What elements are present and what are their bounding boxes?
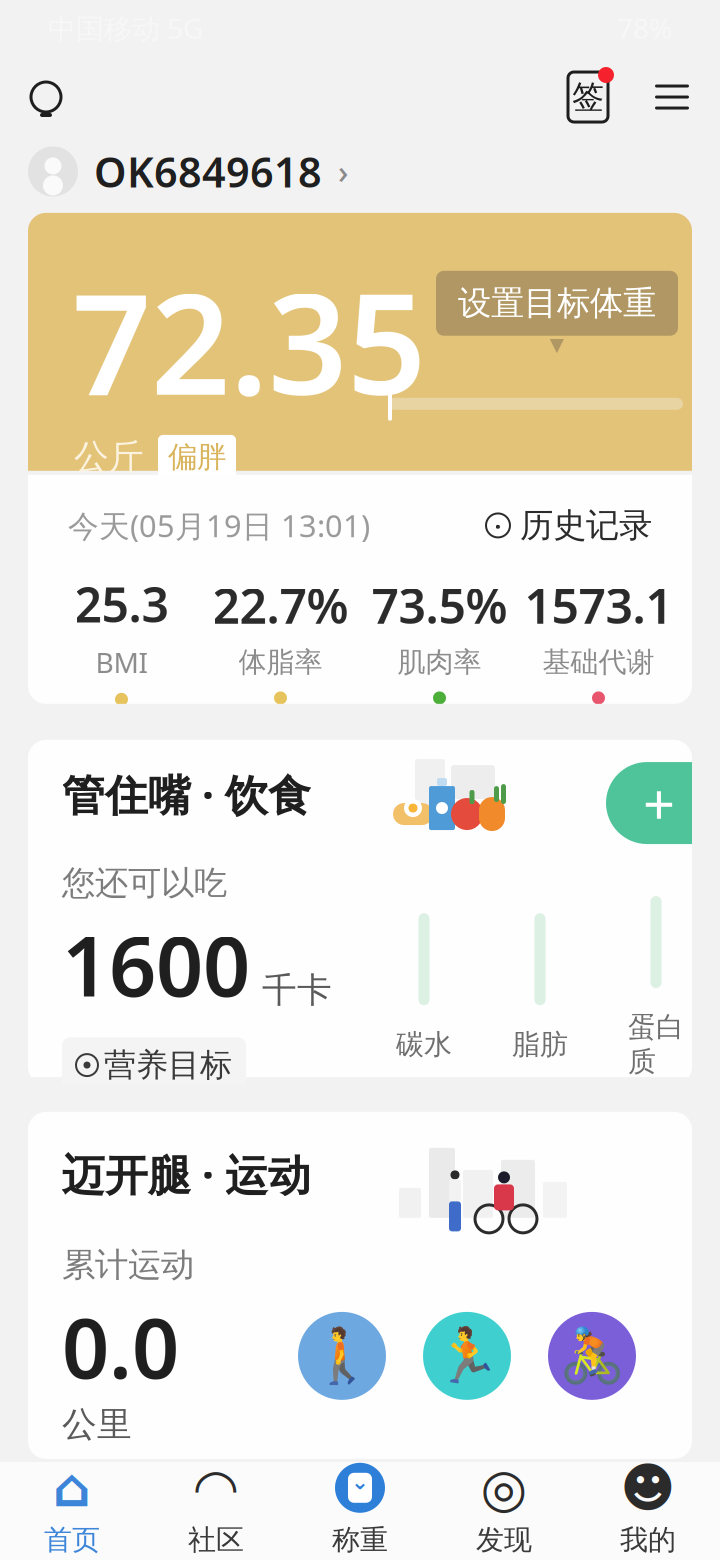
staticText: 签 xyxy=(572,77,604,117)
staticText: 72.35 xyxy=(72,249,426,433)
button[interactable]: 骑行 xyxy=(548,1312,636,1400)
staticText: 25.3 xyxy=(74,572,168,636)
staticText: 🚶 xyxy=(309,1325,375,1386)
staticText: ⌄ xyxy=(351,1470,369,1494)
staticText: 首页 xyxy=(44,1523,100,1557)
button[interactable]: 签到 xyxy=(562,69,614,125)
button[interactable]: ◠ xyxy=(144,1455,288,1560)
button[interactable]: 跑步 xyxy=(423,1312,511,1400)
button[interactable]: ⌄ xyxy=(288,1455,432,1560)
staticText: 累计运动 xyxy=(62,1244,194,1285)
staticText: ◠ xyxy=(192,1457,239,1518)
staticText: 🏃 xyxy=(434,1325,500,1386)
staticText: 1573.1 xyxy=(524,573,672,637)
button[interactable]: 设置目标体重 xyxy=(436,271,678,336)
staticText: 迈开腿 · 运动 xyxy=(62,1146,311,1203)
staticText: 社区 xyxy=(188,1523,244,1557)
staticText: 公里 xyxy=(62,1403,132,1446)
button[interactable]: ◎ xyxy=(432,1455,576,1560)
staticText: 基础代谢 xyxy=(542,645,654,679)
staticText: 发现 xyxy=(476,1523,532,1557)
staticText: BMI xyxy=(95,644,147,681)
button[interactable]: · xyxy=(486,505,652,546)
staticText: ⌂ xyxy=(53,1457,91,1518)
staticText: 22.7% xyxy=(212,573,348,637)
staticText: 肌肉率 xyxy=(397,645,481,679)
button[interactable]: OK6849618 xyxy=(0,138,720,213)
staticText: ☻ xyxy=(620,1457,676,1518)
staticText: 公斤 xyxy=(74,436,144,478)
staticText: 碳水 xyxy=(396,1027,452,1062)
button[interactable]: 添加饮食 xyxy=(562,762,692,844)
staticText: · xyxy=(494,509,501,541)
button[interactable]: 走路 xyxy=(298,1312,386,1400)
staticText: 73.5% xyxy=(371,573,507,637)
staticText: 千卡 xyxy=(262,969,332,1011)
staticText: 🚴 xyxy=(559,1325,625,1386)
button[interactable]: ☻ xyxy=(576,1455,720,1560)
staticText: 蛋白质 xyxy=(628,1010,684,1079)
button[interactable]: 营养目标 xyxy=(62,1037,246,1093)
staticText: 1600 xyxy=(62,910,250,1019)
button[interactable]: ⌂ xyxy=(0,1455,144,1560)
staticText: 偏胖 xyxy=(168,439,226,475)
button[interactable]: 菜单 xyxy=(650,75,694,119)
staticText: 设置目标体重 xyxy=(458,283,656,324)
staticText: OK6849618 xyxy=(94,144,322,199)
staticText: 我的 xyxy=(620,1523,676,1557)
staticText: 脂肪 xyxy=(512,1027,568,1062)
staticText: ▾ xyxy=(549,327,564,360)
staticText: › xyxy=(338,150,348,193)
staticText: 管住嘴 · 饮食 xyxy=(62,766,311,823)
staticText: 您还可以吃 xyxy=(62,863,227,904)
staticText: ◎ xyxy=(480,1457,527,1518)
staticText: 称重 xyxy=(332,1523,388,1557)
staticText: 营养目标 xyxy=(104,1045,232,1085)
staticText: 0.0 xyxy=(62,1291,179,1401)
staticText: + xyxy=(643,766,675,840)
staticText: 体脂率 xyxy=(238,645,322,679)
staticText: 今天(05月19日 13:01) xyxy=(68,505,370,546)
staticText: 历史记录 xyxy=(520,505,652,546)
button[interactable]: 通知 xyxy=(26,75,66,119)
